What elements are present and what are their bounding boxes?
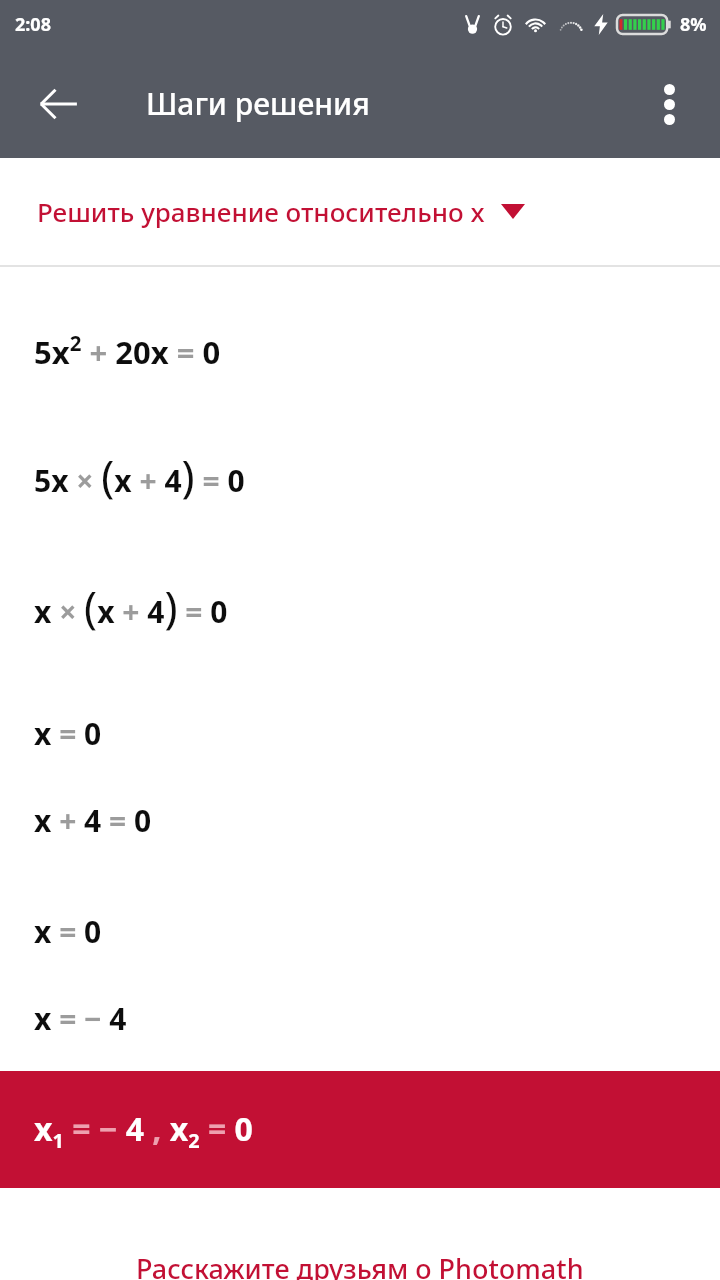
- button[interactable]: Решить уравнение относительно x: [0, 158, 720, 265]
- button[interactable]: More options: [640, 75, 698, 133]
- staticText: x = 0: [34, 911, 102, 952]
- button[interactable]: Расскажите друзьям о Photomath: [0, 1250, 720, 1280]
- staticText: x + 4 = 0: [34, 800, 152, 841]
- staticText: x × (x + 4) = 0: [34, 576, 228, 635]
- staticText: x1 = − 4 , x2 = 0: [34, 1107, 253, 1153]
- staticText: x = − 4: [34, 998, 127, 1039]
- staticText: 8%: [680, 12, 707, 37]
- staticText: x = 0: [34, 713, 102, 754]
- staticText: Решить уравнение относительно x: [37, 194, 485, 229]
- staticText: 5x2 + 20x = 0: [34, 329, 221, 373]
- button[interactable]: x1 = − 4 , x2 = 0: [0, 1071, 720, 1188]
- staticText: 2:08: [15, 12, 51, 37]
- button[interactable]: Back: [30, 76, 86, 132]
- staticText: Расскажите друзьям о Photomath: [136, 1250, 584, 1280]
- staticText: Шаги решения: [146, 83, 370, 124]
- staticText: 5x × (x + 4) = 0: [34, 445, 245, 504]
